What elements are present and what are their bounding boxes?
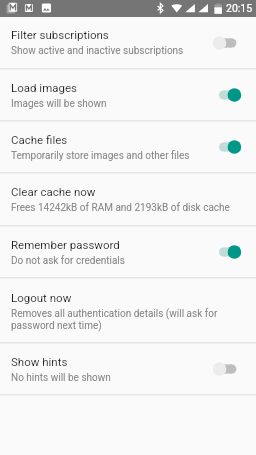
button[interactable]: Load images <box>0 70 256 120</box>
staticText: Do not ask for credentials <box>11 255 125 267</box>
staticText: 20:15 <box>226 2 253 14</box>
button[interactable]: Clear cache now <box>0 174 256 225</box>
staticText: Filter subscriptions <box>11 28 109 41</box>
button[interactable]: Cache files <box>0 122 256 172</box>
button[interactable]: Toggle on <box>213 137 242 157</box>
staticText: Temporarily store images and other files <box>11 150 190 162</box>
staticText: Clear cache now <box>11 185 96 198</box>
button[interactable]: Toggle off <box>213 359 242 379</box>
button[interactable]: Toggle on <box>213 242 242 262</box>
button[interactable]: Show hints <box>0 344 256 394</box>
staticText: Show hints <box>11 355 68 368</box>
staticText: Frees 14242kB of RAM and 2193kB of disk … <box>11 202 230 214</box>
staticText: No hints will be shown <box>11 372 111 384</box>
staticText: Removes all authentication details (will… <box>11 308 218 331</box>
button[interactable]: Filter subscriptions <box>0 17 256 68</box>
staticText: Logout now <box>11 291 72 304</box>
staticText: Cache files <box>11 133 68 146</box>
staticText: Images will be shown <box>11 98 107 110</box>
button[interactable]: Toggle off <box>213 33 242 53</box>
button[interactable]: Logout now <box>0 279 256 342</box>
staticText: Remember password <box>11 238 120 251</box>
staticText: Show active and inactive subscriptions <box>11 45 184 57</box>
button[interactable]: Toggle on <box>213 85 242 105</box>
button[interactable]: Remember password <box>0 227 256 277</box>
staticText: Load images <box>11 81 77 94</box>
